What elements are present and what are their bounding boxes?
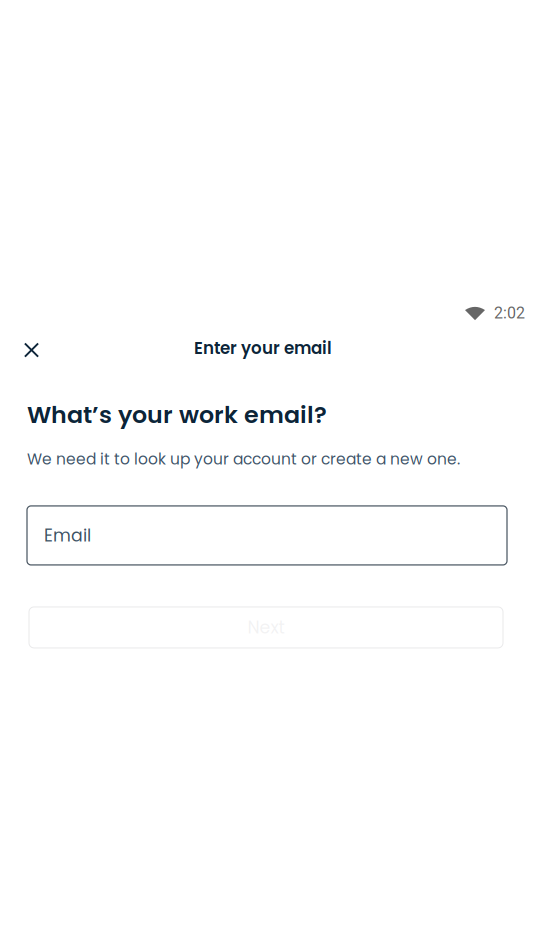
staticText: 2:02 xyxy=(494,304,525,322)
staticText: Next xyxy=(247,615,284,640)
button[interactable]: Close xyxy=(9,328,53,372)
button[interactable]: Email xyxy=(27,506,507,565)
staticText: Enter your email xyxy=(194,336,332,360)
staticText: What’s your work email? xyxy=(27,398,327,431)
staticText: Email xyxy=(44,523,91,548)
staticText: We need it to look up your account or cr… xyxy=(27,448,460,470)
